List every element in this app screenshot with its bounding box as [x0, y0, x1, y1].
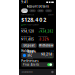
staticText: +1.8%: [48, 56, 52, 58]
button[interactable]: Week: [29, 9, 36, 12]
staticText: +$3,071.22 today: [27, 24, 39, 26]
staticText: Updated just now: [21, 71, 32, 73]
staticText: Week: [30, 10, 34, 12]
staticText: $94,120: [21, 30, 34, 33]
staticText: Buying Power: [21, 35, 31, 37]
staticText: $11,405: [21, 38, 34, 41]
staticText: Preferences: [21, 59, 38, 63]
button[interactable]: Updated just now: [21, 71, 32, 73]
staticText: $8,214: [41, 53, 52, 56]
staticText: Month: [38, 10, 42, 12]
staticText: Total Gain: [39, 28, 45, 29]
staticText: Apple Inc.: [27, 50, 36, 57]
staticText: AAPL · 42 shares: [27, 57, 33, 61]
button[interactable]: Deposit: [21, 43, 37, 48]
staticText: USD · Live: [48, 14, 54, 16]
staticText: Account Details: [26, 5, 48, 8]
staticText: ▲ 2.45%: [21, 24, 26, 26]
staticText: 9:41: [21, 0, 28, 4]
button[interactable]: Withdraw: [38, 43, 54, 48]
button[interactable]: Month: [37, 9, 44, 12]
staticText: See all: [50, 50, 54, 52]
button[interactable]: Year: [45, 9, 52, 12]
staticText: Day Change: [39, 35, 48, 37]
staticText: Holdings: [21, 49, 34, 53]
staticText: PORTFOLIO VALUE: [21, 14, 34, 16]
button[interactable]: Apple Inc.: [21, 52, 54, 58]
staticText: Withdraw: [39, 44, 53, 47]
staticText: Invested: [21, 28, 27, 29]
staticText: $128,4 0 2: [21, 16, 46, 23]
staticText: Today: [22, 9, 26, 12]
staticText: Price Alerts: [23, 63, 39, 66]
staticText: Deposit: [23, 44, 34, 47]
staticText: -0.32%: [39, 38, 49, 41]
button[interactable]: Today: [21, 8, 28, 13]
button[interactable]: More: [51, 71, 54, 73]
staticText: Year: [46, 10, 50, 12]
button[interactable]: Price Alerts: [21, 62, 54, 67]
staticText: +$34,282: [39, 30, 54, 33]
